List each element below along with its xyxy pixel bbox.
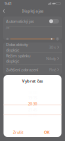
staticText: Vybrat čas — [22, 78, 43, 84]
button[interactable]: Back — [0, 7, 8, 15]
staticText: 20 — [28, 101, 32, 106]
staticText: Automatický jas — [6, 19, 34, 24]
staticText: Plné — [49, 67, 56, 72]
staticText: 9:41 — [4, 1, 11, 6]
staticText: 30 — [33, 101, 37, 106]
button[interactable]: Automatický jas — [3, 16, 62, 26]
staticText: Zvětšení zobrazení — [6, 67, 38, 72]
staticText: Displej a jas — [21, 8, 43, 14]
staticText: Nikdy — [46, 56, 56, 61]
button[interactable]: Zvětšení zobrazení — [3, 65, 62, 74]
button[interactable]: Doba aktivity displeje — [3, 42, 62, 52]
staticText: 00 — [33, 112, 37, 117]
staticText: 30 s — [49, 44, 56, 50]
button[interactable]: OK — [32, 129, 61, 136]
button[interactable]: Zrušit — [3, 129, 32, 136]
staticText: Jas — [6, 26, 9, 29]
staticText: Režim spánku displeje — [6, 53, 30, 64]
button[interactable]: Režim spánku displeje — [3, 52, 62, 64]
staticText: Zrušit — [13, 129, 23, 135]
staticText: Doba aktivity displeje — [6, 42, 28, 52]
staticText: OK — [44, 129, 50, 135]
staticText: 22 — [28, 112, 32, 117]
